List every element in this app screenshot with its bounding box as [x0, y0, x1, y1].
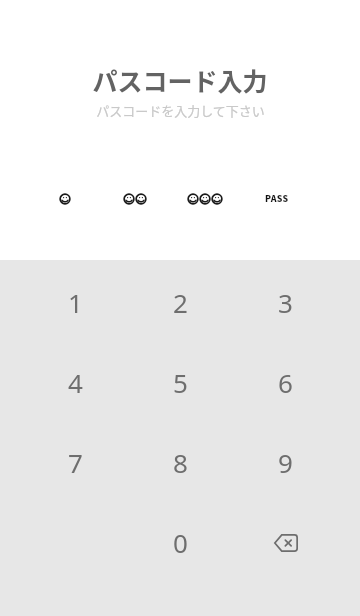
button[interactable]: Passcode length 3 — [183, 186, 227, 212]
button[interactable]: Passcode length 2 — [113, 186, 157, 212]
button[interactable]: PASS — [255, 185, 299, 211]
button[interactable]: 7 — [23, 422, 128, 502]
button[interactable]: 4 — [23, 342, 128, 422]
button[interactable]: 0 — [128, 502, 233, 582]
button[interactable]: 5 — [128, 342, 233, 422]
staticText: パスコード入力 — [92, 62, 268, 98]
staticText: PASS — [265, 192, 289, 205]
staticText: 4 — [68, 365, 83, 400]
button[interactable]: 2 — [128, 262, 233, 342]
staticText: 3 — [278, 285, 293, 320]
staticText: 5 — [173, 365, 188, 400]
button[interactable]: 3 — [233, 262, 338, 342]
staticText: 6 — [278, 365, 293, 400]
button[interactable]: 1 — [23, 262, 128, 342]
button[interactable]: 8 — [128, 422, 233, 502]
staticText: パスコードを入力して下さい — [96, 101, 265, 120]
staticText: 7 — [68, 445, 83, 480]
staticText: 9 — [278, 445, 293, 480]
staticText: 2 — [173, 285, 188, 320]
staticText: 8 — [173, 445, 188, 480]
button[interactable]: 6 — [233, 342, 338, 422]
button[interactable]: Delete — [233, 502, 338, 582]
staticText: 0 — [173, 525, 188, 560]
button[interactable]: Passcode length 1 — [43, 186, 87, 212]
staticText: 1 — [68, 285, 83, 320]
button[interactable]: 9 — [233, 422, 338, 502]
